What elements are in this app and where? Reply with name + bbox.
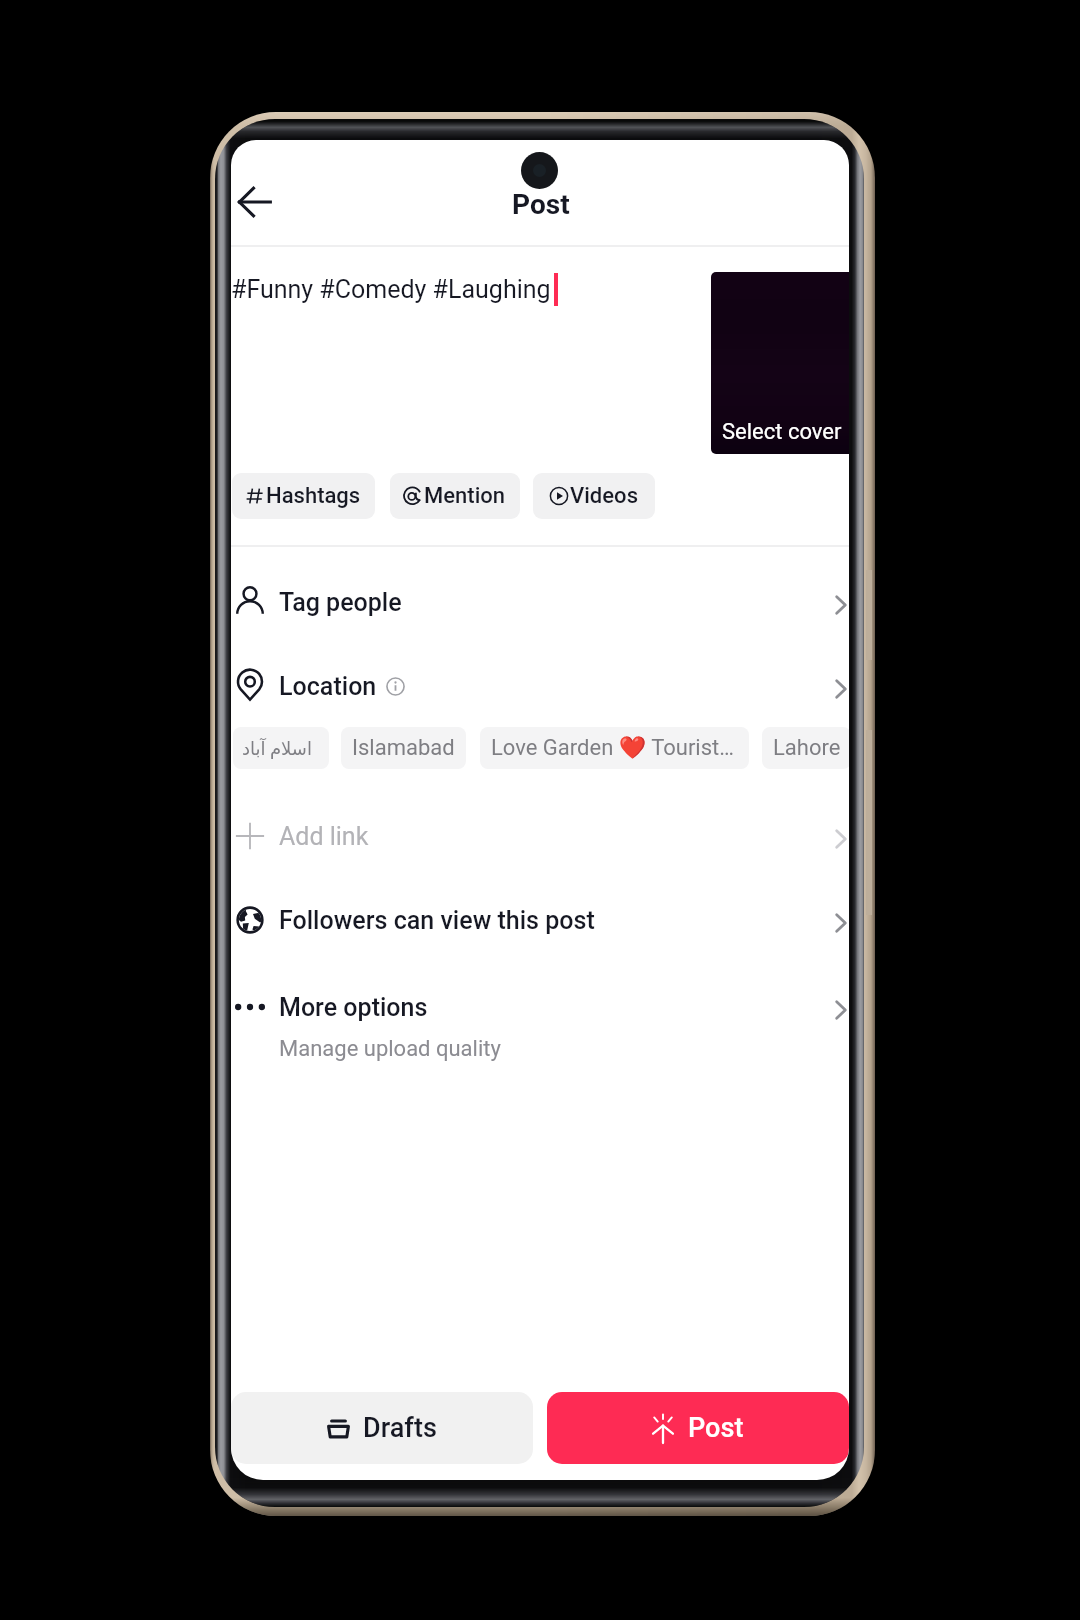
staticText: Mention xyxy=(424,483,506,509)
staticText: Location xyxy=(279,672,377,701)
button[interactable]: Select cover xyxy=(711,272,849,454)
staticText: Add link xyxy=(279,822,369,851)
staticText: Followers can view this post xyxy=(279,906,595,935)
staticText: اسلام آباد xyxy=(242,738,312,759)
staticText: Islamabad xyxy=(352,735,455,761)
button[interactable]: Add link xyxy=(231,808,849,864)
button[interactable]: Islamabad xyxy=(341,727,466,769)
button[interactable]: Back xyxy=(231,172,285,232)
staticText: Love Garden ❤️ Tourist… xyxy=(491,735,734,761)
button[interactable]: Tag people xyxy=(231,574,849,630)
staticText: Select cover xyxy=(722,419,842,445)
button[interactable]: Love Garden ❤️ Tourist… xyxy=(480,727,749,769)
button[interactable]: Lahore Fort xyxy=(762,727,849,769)
button[interactable]: اسلام آباد xyxy=(233,727,329,769)
button[interactable]: Videos xyxy=(533,473,655,519)
staticText: Hashtags xyxy=(266,483,361,509)
button[interactable]: Mention xyxy=(390,473,520,519)
button[interactable]: Drafts xyxy=(231,1392,533,1464)
button[interactable]: Followers can view this post xyxy=(231,892,849,948)
staticText: Post xyxy=(688,1412,744,1444)
staticText: Drafts xyxy=(363,1412,437,1444)
staticText: Post xyxy=(512,188,570,221)
staticText: Manage upload quality xyxy=(279,1036,501,1062)
staticText: Videos xyxy=(570,483,638,509)
button[interactable]: More options xyxy=(231,979,849,1073)
button[interactable]: Location xyxy=(231,658,849,714)
staticText: #Funny #Comedy #Laughing xyxy=(231,275,557,304)
button[interactable]: Post xyxy=(547,1392,849,1464)
staticText: Tag people xyxy=(279,588,402,617)
staticText: Lahore Fort xyxy=(773,735,840,761)
button[interactable]: Hashtags xyxy=(232,473,375,519)
staticText: More options xyxy=(279,993,428,1022)
